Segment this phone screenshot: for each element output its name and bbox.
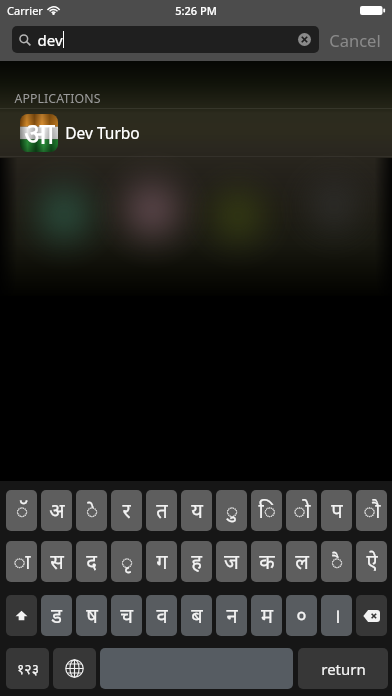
staticText: dev (37, 30, 63, 50)
staticText: ौ (363, 497, 381, 524)
staticText: ो (293, 497, 311, 524)
button[interactable]: े (76, 490, 107, 531)
button[interactable]: Space (100, 648, 293, 689)
button[interactable]: ि (251, 490, 282, 531)
button[interactable]: । (321, 595, 352, 636)
button[interactable]: Shift (6, 595, 37, 636)
staticText: ॅ (16, 497, 28, 524)
staticText: ष (86, 602, 98, 629)
button[interactable]: ल (286, 541, 317, 582)
button[interactable]: र (111, 490, 142, 531)
staticText: ड (51, 602, 62, 629)
button[interactable]: ह (181, 541, 212, 582)
staticText: return (321, 659, 366, 679)
button[interactable]: return (298, 648, 388, 689)
button[interactable]: व (146, 595, 177, 636)
staticText: ल (295, 548, 309, 575)
button[interactable]: ब (181, 595, 212, 636)
staticText: द (86, 548, 97, 575)
button[interactable]: ऐ (356, 541, 387, 582)
staticText: ि (258, 497, 276, 524)
staticText: अ (49, 497, 65, 524)
staticText: ु (226, 497, 238, 524)
staticText: १२३ (17, 659, 39, 678)
staticText: ० (296, 602, 307, 629)
staticText: र (122, 497, 131, 524)
button[interactable]: ु (216, 490, 247, 531)
staticText: ै (331, 548, 343, 575)
button[interactable]: ै (321, 541, 352, 582)
staticText: स (50, 548, 64, 575)
button[interactable]: म (251, 595, 282, 636)
staticText: । (333, 602, 341, 629)
button[interactable]: द (76, 541, 107, 582)
staticText: 5:26 PM (175, 3, 217, 18)
button[interactable]: ा (6, 541, 37, 582)
staticText: व (156, 602, 168, 629)
staticText: ग (156, 548, 168, 575)
button[interactable]: आ (0, 109, 392, 156)
button[interactable]: प (321, 490, 352, 531)
staticText: क (259, 548, 275, 575)
staticText: च (120, 602, 133, 629)
button[interactable]: ौ (356, 490, 387, 531)
button[interactable]: च (111, 595, 142, 636)
button[interactable]: ॅ (6, 490, 37, 531)
staticText: APPLICATIONS (14, 90, 101, 107)
button[interactable]: Backspace (356, 595, 387, 636)
button[interactable]: ग (146, 541, 177, 582)
button[interactable]: Cancel (329, 26, 381, 53)
button[interactable]: त (146, 490, 177, 531)
staticText: ह (191, 548, 202, 575)
staticText: ा (13, 548, 31, 575)
button[interactable]: dev (12, 26, 319, 53)
staticText: Dev Turbo (65, 122, 140, 143)
staticText: य (191, 497, 203, 524)
button[interactable]: ो (286, 490, 317, 531)
staticText: त (156, 497, 168, 524)
button[interactable]: अ (41, 490, 72, 531)
staticText: ब (191, 602, 203, 629)
staticText: आ (24, 114, 55, 150)
staticText: म (261, 602, 273, 629)
button[interactable]: ष (76, 595, 107, 636)
staticText: े (86, 497, 98, 524)
staticText: ऐ (366, 548, 378, 575)
button[interactable]: १२३ (6, 648, 49, 689)
button[interactable]: ० (286, 595, 317, 636)
staticText: ज (224, 548, 239, 575)
staticText: प (331, 497, 343, 524)
staticText: Cancel (329, 29, 381, 51)
staticText: न (226, 602, 238, 629)
button[interactable]: ड (41, 595, 72, 636)
staticText: ृ (121, 548, 133, 575)
button[interactable]: Clear text (298, 33, 311, 46)
button[interactable]: Switch keyboard (53, 648, 96, 689)
button[interactable]: ृ (111, 541, 142, 582)
staticText: Carrier (7, 3, 43, 18)
button[interactable]: क (251, 541, 282, 582)
button[interactable]: य (181, 490, 212, 531)
button[interactable]: ज (216, 541, 247, 582)
button[interactable]: स (41, 541, 72, 582)
button[interactable]: न (216, 595, 247, 636)
